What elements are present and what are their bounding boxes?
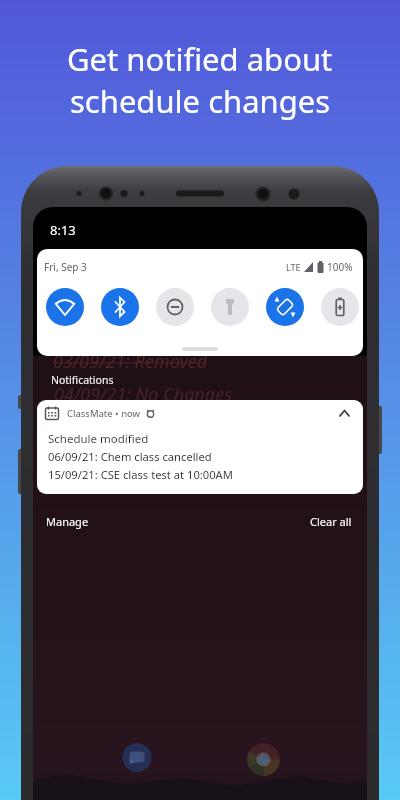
button[interactable]: [156, 288, 194, 326]
staticText: Notifications: [51, 373, 114, 387]
staticText: Fri, Sep 3: [44, 260, 87, 274]
button[interactable]: Clear all: [310, 514, 352, 529]
staticText: ClassMate • now: [67, 407, 141, 420]
staticText: 100%: [327, 260, 353, 274]
staticText: 06/09/21: Chem class cancelled: [48, 449, 212, 464]
button[interactable]: [266, 288, 304, 326]
button[interactable]: [101, 288, 139, 326]
button[interactable]: [321, 288, 359, 326]
staticText: Schedule modified: [48, 431, 149, 447]
staticText: Get notified about: [67, 38, 333, 80]
staticText: schedule changes: [70, 80, 331, 122]
button[interactable]: Manage: [46, 514, 89, 529]
staticText: 15/09/21: CSE class test at 10:00AM: [48, 467, 233, 482]
staticText: 04/09/21: No Changes: [54, 382, 232, 407]
staticText: 8:13: [50, 221, 76, 239]
button[interactable]: [46, 288, 84, 326]
button[interactable]: [338, 409, 351, 418]
staticText: 03/09/21: Removed: [53, 349, 208, 374]
button[interactable]: [211, 288, 249, 326]
staticText: LTE: [286, 261, 301, 273]
